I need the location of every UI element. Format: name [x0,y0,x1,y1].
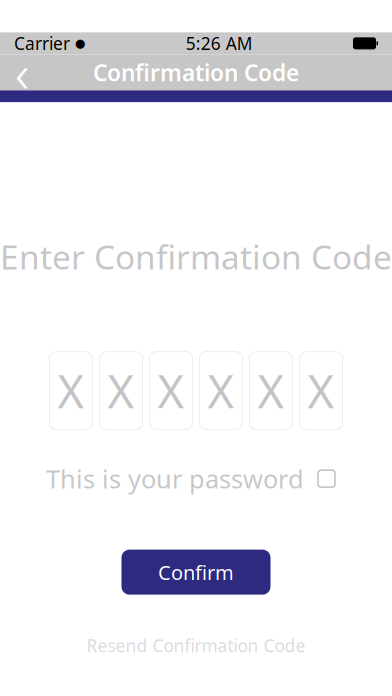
staticText: X [107,360,134,421]
staticText: Confirm [158,559,234,585]
button[interactable]: Resend Confirmation Code [86,636,305,656]
staticText: X [257,360,284,421]
staticText: Confirmation Code [93,57,299,87]
staticText: Enter Confirmation Code [0,234,392,279]
staticText: ‹ [15,37,29,108]
staticText: This is your password [46,462,304,495]
staticText: X [57,360,84,421]
staticText: Resend Confirmation Code [86,634,305,657]
button[interactable]: Back [0,54,44,90]
staticText: 5:26 AM [186,32,253,55]
staticText: Carrier [14,32,70,55]
staticText: ● [75,37,85,50]
staticText: X [207,360,234,421]
staticText: X [307,360,334,421]
button[interactable]: Confirm [121,550,270,595]
button[interactable]: This is your password [0,464,392,494]
staticText: X [157,360,184,421]
